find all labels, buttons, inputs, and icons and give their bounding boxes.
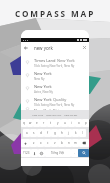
button[interactable]: d [37,129,44,137]
staticText: i [71,121,72,125]
button[interactable]: Emoji [38,149,45,157]
staticText: j [68,131,69,135]
staticText: New York [57,58,75,63]
staticText: x [40,141,42,145]
staticText: e [36,121,38,125]
button[interactable]: New York Citiee [21,108,89,110]
button[interactable]: New York [21,82,89,95]
staticText: y [57,121,59,125]
button[interactable]: Back [21,42,89,53]
staticText: s [33,131,35,135]
staticText: b [61,141,63,145]
button[interactable]: Tiếng Việt [45,149,71,157]
button[interactable]: t [47,119,54,127]
staticText: o [78,121,80,125]
button[interactable]: l [79,129,86,137]
button[interactable]: ?123 [21,149,31,157]
staticText: p [85,121,87,125]
other: Back [24,46,28,50]
staticText: a [26,131,28,135]
button[interactable]: Voice input [31,149,38,157]
button[interactable]: Shift [21,139,30,147]
button[interactable]: r [40,119,47,127]
button[interactable]: v [51,139,58,147]
staticText: New York [34,97,53,102]
staticText: New York [34,84,52,89]
button[interactable]: k [72,129,79,137]
staticText: z [33,141,35,145]
button[interactable]: h [58,129,65,137]
staticText: COMPASS MAP [15,8,96,19]
staticText: new york [34,45,53,51]
button[interactable]: n [65,139,72,147]
button[interactable]: Backspace [79,139,89,147]
staticText: r [43,121,45,125]
button[interactable]: New York [21,69,89,82]
staticText: Tiếng Việt [51,151,65,155]
staticText: q [23,121,25,125]
staticText: h [61,131,63,135]
staticText: u [64,121,66,125]
staticText: New York [34,71,52,76]
button[interactable]: b [58,139,65,147]
button[interactable]: g [51,129,58,137]
staticText: Tibb Swing New York, New Ny [34,103,75,107]
button[interactable]: a [23,129,30,137]
staticText: c [47,141,49,145]
button[interactable]: i [68,119,75,127]
staticText: v [54,141,56,145]
button[interactable]: p [82,119,89,127]
staticText: New Ny [34,77,45,81]
button[interactable]: y [54,119,61,127]
staticText: k [75,131,77,135]
staticText: w [29,121,32,125]
staticText: t [50,121,52,125]
button[interactable]: New York [21,95,89,108]
button[interactable]: Times Land [21,56,89,69]
staticText: ?123 [23,151,30,155]
staticText: m [74,141,77,145]
staticText: Times Land [34,58,57,63]
staticText: d [40,131,42,135]
staticText: n [68,141,70,145]
button[interactable]: s [30,129,37,137]
staticText: New York Citiee [34,108,64,110]
other: Clear [83,46,86,49]
staticText: g [54,131,56,135]
staticText: New york New york city New yorker [32,113,78,116]
button[interactable]: w [27,119,33,127]
button[interactable]: f [44,129,51,137]
button[interactable]: x [37,139,44,147]
button[interactable]: z [30,139,37,147]
button[interactable]: e [33,119,40,127]
staticText: l [82,131,83,135]
button[interactable]: Search [78,149,89,157]
staticText: . [74,151,75,155]
button[interactable]: c [44,139,51,147]
staticText: Quality [53,97,67,102]
button[interactable]: u [61,119,68,127]
button[interactable]: q [21,119,27,127]
button[interactable]: j [65,129,72,137]
button[interactable]: m [72,139,79,147]
staticText: Astra, New Ny [34,90,54,94]
button[interactable]: o [75,119,82,127]
staticText: f [47,131,49,135]
staticText: Tibb Swing New York, New Ny [34,64,75,68]
